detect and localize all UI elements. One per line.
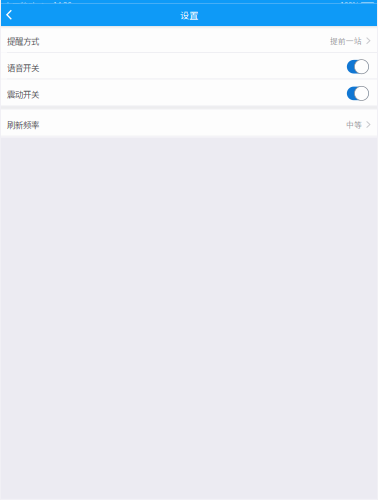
button[interactable]: 刷新频率 [0, 110, 378, 136]
staticText: 中国移动 [4, 0, 36, 11]
staticText: 刷新频率 [7, 118, 39, 131]
button[interactable]: 提醒方式 [0, 26, 378, 52]
staticText: 中等 [346, 119, 362, 130]
staticText: 提前一站 [330, 35, 362, 46]
button[interactable]: 返回 [0, 3, 24, 26]
staticText: 语音开关 [7, 61, 39, 74]
staticText: 震动开关 [7, 88, 39, 100]
staticText: 设置 [180, 8, 198, 21]
button[interactable]: 语音开关 [0, 53, 378, 79]
staticText: 提醒方式 [7, 35, 39, 47]
staticText: 100% [340, 0, 359, 11]
button[interactable]: 震动开关 [0, 79, 378, 105]
staticText: 14:36 [53, 0, 71, 11]
